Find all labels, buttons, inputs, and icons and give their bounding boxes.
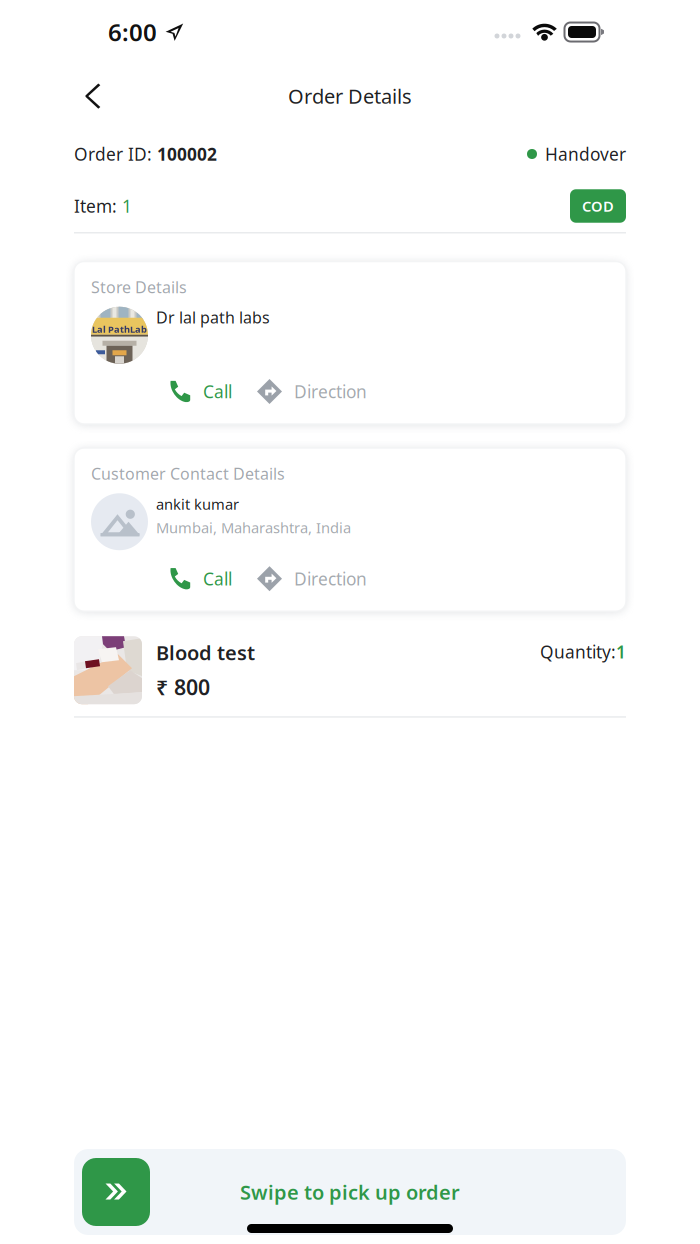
button[interactable]: Direction [257,373,367,410]
button[interactable]: Swipe to pick up order [74,1149,626,1235]
staticText: 1 [616,640,626,663]
button[interactable]: Direction [257,560,367,597]
staticText: Blood test [156,639,255,666]
staticText: ₹ 800 [156,673,210,701]
staticText: Customer Contact Details [91,463,285,484]
staticText: Store Details [91,276,187,298]
staticText: Order ID: [74,142,157,165]
staticText: Dr lal path labs [156,307,270,328]
staticText: Mumbai, Maharashtra, India [156,518,351,537]
button[interactable]: Call [168,561,232,597]
staticText: Direction [294,380,367,403]
staticText: 6:00 [108,16,157,48]
staticText: Handover [545,142,626,165]
staticText: Item: [74,194,122,217]
staticText: Call [203,567,232,590]
staticText: Call [203,380,232,403]
staticText: Order Details [288,83,412,109]
staticText: Lal PathLab [92,323,147,335]
staticText: COD [582,196,614,216]
staticText: Direction [294,567,367,590]
button[interactable]: Back [70,72,116,120]
staticText: 1 [122,194,132,217]
staticText: ankit kumar [156,494,239,514]
staticText: 100002 [157,142,217,165]
staticText: Quantity: [540,640,616,663]
button[interactable]: Call [168,373,232,409]
staticText: Swipe to pick up order [240,1179,460,1205]
